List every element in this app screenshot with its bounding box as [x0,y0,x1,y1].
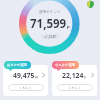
staticText: ウェルナ運用 [55,63,76,67]
staticText: おまかせ運用 [7,63,28,67]
button[interactable]: くわしく [57,84,93,91]
button[interactable]: 22,124 [52,65,97,96]
button[interactable]: 49,475 [3,65,48,96]
staticText: くわしく [68,86,82,90]
button[interactable]: おまかせ運用 [4,61,31,69]
staticText: くわしく [19,86,33,90]
staticText: 円 [35,76,39,80]
button[interactable]: Rewards [86,0,95,8]
staticText: P [67,25,70,31]
staticText: 運用ポイント [39,10,61,15]
staticText: 71,599 [30,16,67,32]
staticText: 49,475 [13,71,35,80]
button[interactable]: +1,234P [41,34,59,39]
staticText: +1,234P [44,35,56,39]
button[interactable]: ウェルナ運用 [52,61,79,69]
button[interactable]: くわしく [8,84,44,91]
other: Details [42,73,45,77]
staticText: P [84,75,87,80]
staticText: 22,124 [62,71,84,80]
other: Details [91,73,94,77]
